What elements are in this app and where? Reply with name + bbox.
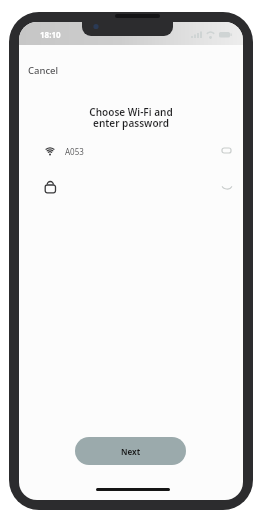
- staticText: 18:10: [40, 29, 61, 40]
- button[interactable]: Cancel: [23, 59, 64, 82]
- staticText: Choose Wi-Fi and enter password: [19, 105, 243, 130]
- staticText: A053: [65, 146, 84, 157]
- button[interactable]: Next: [75, 437, 186, 465]
- button[interactable]: A053: [43, 140, 233, 162]
- button[interactable]: [43, 176, 233, 198]
- staticText: Next: [121, 446, 141, 457]
- staticText: Cancel: [28, 64, 59, 77]
